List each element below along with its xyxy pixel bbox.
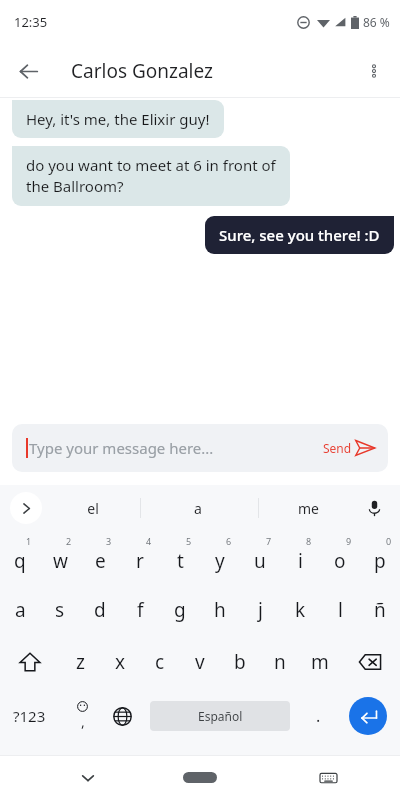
button[interactable]: me — [268, 485, 348, 531]
staticText: o — [334, 548, 346, 574]
staticText: ñ — [374, 597, 386, 623]
button[interactable]: Type your message here... — [12, 424, 388, 472]
staticText: a — [15, 597, 26, 623]
staticText: , — [81, 712, 85, 731]
button[interactable]: 5 — [160, 532, 200, 584]
staticText: k — [295, 597, 306, 623]
button[interactable]: ñ — [360, 584, 400, 636]
staticText: 86 % — [363, 14, 390, 30]
staticText: r — [136, 548, 144, 574]
staticText: q — [14, 548, 26, 574]
button[interactable]: f — [120, 584, 160, 636]
staticText: 8 — [306, 535, 312, 547]
staticText: 4 — [146, 535, 152, 547]
button[interactable]: Send — [323, 437, 376, 459]
staticText: n — [274, 649, 286, 675]
staticText: l — [338, 597, 343, 623]
button[interactable]: More suggestions — [10, 492, 42, 524]
staticText: 3 — [106, 535, 112, 547]
button[interactable]: a — [0, 584, 40, 636]
button[interactable]: n — [260, 636, 300, 688]
staticText: me — [298, 499, 319, 518]
staticText: p — [374, 548, 386, 574]
button[interactable]: h — [200, 584, 240, 636]
button[interactable]: g — [160, 584, 200, 636]
staticText: e — [95, 548, 106, 574]
button[interactable]: Emoji — [62, 696, 102, 736]
staticText: a — [194, 499, 202, 518]
button[interactable]: Sure, see you there! :D — [205, 216, 394, 254]
staticText: 5 — [186, 535, 192, 547]
button[interactable]: el — [53, 485, 133, 531]
staticText: 6 — [226, 535, 232, 547]
staticText: do you want to meet at 6 in front of the… — [26, 155, 276, 197]
staticText: 1 — [26, 535, 32, 547]
button[interactable]: a — [158, 485, 238, 531]
button[interactable]: More options — [356, 53, 392, 89]
staticText: x — [115, 649, 126, 675]
button[interactable]: Home — [183, 772, 217, 783]
staticText: j — [258, 597, 263, 623]
staticText: Send — [323, 440, 352, 456]
button[interactable]: 9 — [320, 532, 360, 584]
button[interactable]: Voice input — [358, 492, 390, 524]
button[interactable]: Hide keyboard — [68, 758, 108, 798]
staticText: el — [87, 499, 99, 518]
button[interactable]: 7 — [240, 532, 280, 584]
staticText: f — [137, 597, 144, 623]
staticText: h — [214, 597, 226, 623]
button[interactable]: 1 — [0, 532, 40, 584]
staticText: b — [234, 649, 246, 675]
staticText: . — [316, 705, 321, 727]
staticText: Carlos Gonzalez — [71, 58, 213, 84]
staticText: w — [53, 548, 68, 574]
button[interactable]: 6 — [200, 532, 240, 584]
staticText: z — [76, 649, 85, 675]
staticText: 12:35 — [14, 13, 48, 31]
button[interactable]: 4 — [120, 532, 160, 584]
button[interactable]: 0 — [360, 532, 400, 584]
button[interactable]: 8 — [280, 532, 320, 584]
staticText: 7 — [266, 535, 272, 547]
button[interactable]: v — [180, 636, 220, 688]
button[interactable]: Switch keyboard — [308, 758, 348, 798]
staticText: ?123 — [13, 706, 46, 726]
staticText: y — [215, 548, 225, 574]
staticText: v — [195, 649, 205, 675]
button[interactable]: 2 — [40, 532, 80, 584]
button[interactable]: Back — [10, 53, 46, 89]
staticText: Hey, it's me, the Elixir guy! — [26, 109, 210, 129]
button[interactable]: ?123 — [6, 693, 52, 739]
button[interactable]: Enter — [349, 697, 387, 735]
button[interactable]: b — [220, 636, 260, 688]
staticText: g — [174, 597, 186, 623]
button[interactable]: k — [280, 584, 320, 636]
staticText: i — [298, 548, 303, 574]
staticText: u — [254, 548, 266, 574]
button[interactable]: c — [140, 636, 180, 688]
button[interactable]: do you want to meet at 6 in front of the… — [12, 146, 290, 206]
staticText: 9 — [346, 535, 352, 547]
button[interactable]: j — [240, 584, 280, 636]
staticText: t — [177, 548, 184, 574]
button[interactable]: . — [298, 696, 338, 736]
button[interactable]: s — [40, 584, 80, 636]
button[interactable]: l — [320, 584, 360, 636]
button[interactable]: Backspace — [340, 636, 400, 688]
button[interactable]: 3 — [80, 532, 120, 584]
button[interactable]: z — [60, 636, 100, 688]
staticText: Sure, see you there! :D — [219, 225, 380, 245]
button[interactable]: Hey, it's me, the Elixir guy! — [12, 100, 224, 138]
staticText: d — [94, 597, 106, 623]
staticText: Type your message here... — [29, 438, 214, 458]
staticText: 0 — [386, 535, 392, 547]
staticText: m — [311, 649, 329, 675]
button[interactable]: Español — [150, 701, 290, 731]
staticText: s — [55, 597, 65, 623]
button[interactable]: m — [300, 636, 340, 688]
button[interactable]: Change language — [102, 696, 142, 736]
button[interactable]: d — [80, 584, 120, 636]
button[interactable]: Shift — [0, 636, 60, 688]
button[interactable]: x — [100, 636, 140, 688]
staticText: 2 — [66, 535, 72, 547]
